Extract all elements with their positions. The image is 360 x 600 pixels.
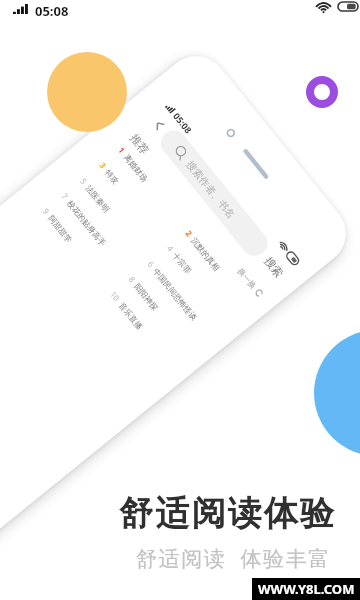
staticText: 6	[145, 259, 157, 269]
staticText: 8	[127, 274, 138, 284]
staticText: 推荐	[127, 131, 152, 157]
staticText: 舒适阅读体验	[119, 492, 337, 535]
staticText: 十宗罪	[170, 250, 193, 275]
staticText: 音乐直播	[117, 300, 145, 331]
staticText: 搜索	[262, 254, 286, 280]
staticText: 离婚财场	[122, 152, 150, 183]
staticText: 搜索作者、书名	[184, 158, 238, 221]
staticText: 法医秦明	[84, 183, 112, 214]
staticText: 5	[78, 175, 90, 186]
staticText: 4	[165, 243, 177, 254]
staticText: 2	[183, 228, 195, 239]
staticText: 阿甜甜学	[46, 213, 74, 244]
staticText: 05:08	[171, 110, 195, 136]
staticText: 校花的贴身高手	[65, 198, 108, 248]
staticText: 舒适阅读 体验丰富	[136, 544, 331, 573]
staticText: 3	[97, 160, 109, 170]
staticText: 换一换	[236, 266, 259, 291]
staticText: WWW.Y8L.COM	[258, 580, 355, 598]
staticText: 1	[116, 145, 128, 155]
staticText: 阳阳神探	[132, 281, 160, 313]
staticText: 中国民间恐怖怪谈	[151, 266, 199, 322]
staticText: 10	[108, 289, 123, 303]
staticText: 沉默的真相	[189, 235, 222, 273]
staticText: 7	[59, 191, 71, 201]
staticText: 特攻	[103, 167, 121, 186]
staticText: 05:08	[35, 2, 69, 20]
staticText: 9	[41, 206, 52, 216]
